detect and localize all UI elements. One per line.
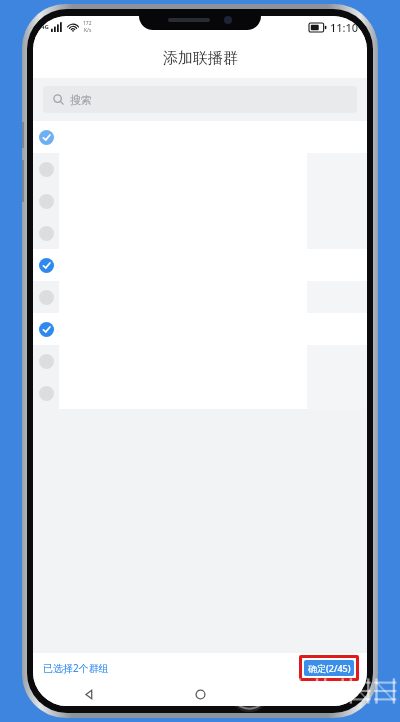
button[interactable] [33,345,367,377]
staticText: 确定(2/45) [308,662,351,674]
staticText: K/s [84,27,92,34]
button[interactable] [33,121,367,153]
button[interactable] [33,249,367,281]
staticText: 4G [41,23,49,31]
button[interactable] [33,377,367,409]
button[interactable]: Home [145,682,256,706]
button[interactable] [33,217,367,249]
button[interactable] [33,281,367,313]
staticText: 11:10 [330,20,359,35]
button[interactable]: 确定(2/45) [304,660,354,676]
button[interactable]: 搜索 [43,86,357,113]
staticText: 搜索 [70,93,92,107]
button[interactable] [33,313,367,345]
staticText: 已选择2个群组 [43,661,109,675]
staticText: 添加联播群 [163,49,238,68]
button[interactable] [33,185,367,217]
button[interactable]: Recents [256,682,367,706]
staticText: 172 [83,20,92,27]
button[interactable] [33,153,367,185]
button[interactable]: Back [33,682,145,706]
